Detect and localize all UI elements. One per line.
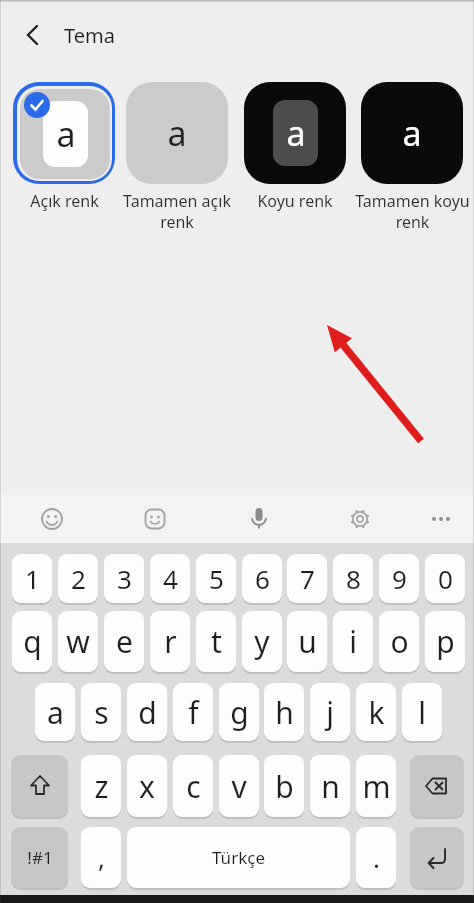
staticText: 8 bbox=[346, 561, 361, 596]
staticText: Tamamen açık renk bbox=[123, 190, 231, 233]
staticText: r bbox=[164, 621, 177, 662]
button[interactable]: o bbox=[379, 611, 419, 672]
button[interactable]: h bbox=[264, 683, 304, 741]
staticText: t bbox=[211, 621, 222, 662]
staticText: 4 bbox=[163, 561, 178, 596]
button[interactable]: f bbox=[173, 683, 213, 741]
button[interactable] bbox=[410, 827, 464, 888]
staticText: q bbox=[23, 621, 42, 662]
button[interactable]: , bbox=[81, 827, 121, 888]
button[interactable]: u bbox=[287, 611, 327, 672]
staticText: a bbox=[402, 110, 422, 156]
staticText: n bbox=[321, 766, 340, 807]
button[interactable]: . bbox=[356, 827, 396, 888]
button[interactable]: y bbox=[242, 611, 282, 672]
staticText: Tema bbox=[64, 22, 115, 49]
staticText: 2 bbox=[71, 561, 86, 596]
staticText: d bbox=[138, 692, 157, 733]
button[interactable] bbox=[423, 501, 459, 537]
button[interactable] bbox=[239, 498, 279, 538]
button[interactable]: 8 bbox=[333, 554, 373, 603]
staticText: h bbox=[275, 692, 294, 733]
staticText: 0 bbox=[438, 561, 453, 596]
button[interactable]: p bbox=[425, 611, 465, 672]
staticText: l bbox=[418, 692, 426, 733]
button[interactable]: x bbox=[127, 755, 167, 817]
button[interactable]: !#1 bbox=[11, 827, 68, 888]
staticText: 1 bbox=[25, 561, 40, 596]
button[interactable]: w bbox=[58, 611, 98, 672]
staticText: e bbox=[116, 621, 133, 662]
staticText: k bbox=[368, 692, 385, 733]
staticText: Açık renk bbox=[30, 190, 99, 212]
button[interactable]: l bbox=[402, 683, 442, 741]
button[interactable]: 1 bbox=[12, 554, 52, 603]
button[interactable]: g bbox=[219, 683, 259, 741]
button[interactable]: c bbox=[173, 755, 213, 817]
staticText: o bbox=[390, 621, 409, 662]
button[interactable]: a bbox=[13, 82, 115, 184]
staticText: a bbox=[56, 111, 76, 157]
staticText: Türkçe bbox=[212, 846, 265, 869]
staticText: a bbox=[47, 692, 64, 733]
staticText: 3 bbox=[117, 561, 132, 596]
button[interactable]: a bbox=[361, 82, 463, 184]
staticText: u bbox=[298, 621, 317, 662]
button[interactable]: Türkçe bbox=[127, 827, 350, 888]
staticText: f bbox=[188, 692, 199, 733]
button[interactable]: 3 bbox=[104, 554, 144, 603]
button[interactable]: 4 bbox=[150, 554, 190, 603]
button[interactable]: a bbox=[244, 82, 346, 184]
button[interactable]: j bbox=[310, 683, 350, 741]
button[interactable]: 2 bbox=[58, 554, 98, 603]
staticText: . bbox=[373, 840, 380, 875]
button[interactable] bbox=[32, 499, 72, 539]
button[interactable]: a bbox=[126, 82, 228, 184]
button[interactable]: e bbox=[104, 611, 144, 672]
button[interactable]: r bbox=[150, 611, 190, 672]
button[interactable]: m bbox=[356, 755, 396, 817]
staticText: j bbox=[326, 692, 334, 733]
staticText: s bbox=[94, 692, 109, 733]
button[interactable]: d bbox=[127, 683, 167, 741]
button[interactable]: t bbox=[196, 611, 236, 672]
staticText: v bbox=[231, 766, 247, 807]
button[interactable]: 7 bbox=[287, 554, 327, 603]
button[interactable] bbox=[410, 755, 464, 817]
staticText: m bbox=[362, 766, 391, 807]
button[interactable] bbox=[135, 499, 175, 539]
button[interactable]: k bbox=[356, 683, 396, 741]
staticText: w bbox=[66, 621, 90, 662]
staticText: g bbox=[230, 692, 249, 733]
staticText: z bbox=[94, 766, 109, 807]
button[interactable]: b bbox=[264, 755, 304, 817]
staticText: !#1 bbox=[27, 846, 53, 869]
button[interactable]: s bbox=[81, 683, 121, 741]
button[interactable]: v bbox=[219, 755, 259, 817]
staticText: , bbox=[98, 840, 105, 875]
button[interactable] bbox=[11, 755, 68, 817]
staticText: x bbox=[139, 766, 155, 807]
staticText: 7 bbox=[300, 561, 315, 596]
staticText: y bbox=[254, 621, 270, 662]
button[interactable]: q bbox=[12, 611, 52, 672]
staticText: 5 bbox=[209, 561, 224, 596]
button[interactable]: i bbox=[333, 611, 373, 672]
button[interactable]: 5 bbox=[196, 554, 236, 603]
staticText: a bbox=[167, 110, 187, 156]
staticText: p bbox=[436, 621, 455, 662]
staticText: 9 bbox=[392, 561, 407, 596]
staticText: c bbox=[186, 766, 201, 807]
button[interactable]: 9 bbox=[379, 554, 419, 603]
button[interactable]: 6 bbox=[242, 554, 282, 603]
button[interactable] bbox=[14, 14, 54, 54]
button[interactable] bbox=[340, 499, 380, 539]
staticText: b bbox=[275, 766, 294, 807]
button[interactable]: 0 bbox=[425, 554, 465, 603]
button[interactable]: a bbox=[35, 683, 75, 741]
button[interactable]: n bbox=[310, 755, 350, 817]
staticText: i bbox=[349, 621, 357, 662]
staticText: Koyu renk bbox=[257, 190, 333, 212]
staticText: 6 bbox=[255, 561, 270, 596]
button[interactable]: z bbox=[81, 755, 121, 817]
